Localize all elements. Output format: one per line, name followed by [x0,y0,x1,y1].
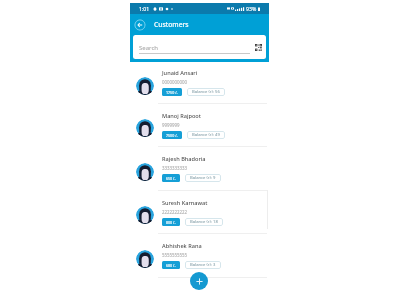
staticText: 93% [246,5,257,12]
staticText: 7500 /- [166,133,178,138]
button[interactable]: Back [133,18,146,31]
staticText: 680 /- [166,263,176,268]
button[interactable]: Balance (r): 18 [185,218,223,226]
staticText: 0000000000 [162,79,188,85]
button[interactable]: Suresh Karnawat [130,191,269,233]
staticText: 800 /- [166,220,176,225]
staticText: 2222222222 [162,209,188,215]
staticText: Manoj Rajpoot [162,112,201,120]
button[interactable]: Rajesh Bhadoria [130,147,269,190]
staticText: 5555555555 [162,252,188,258]
staticText: 9999999 [162,122,180,128]
staticText: Suresh Karnawat [162,199,208,207]
staticText: Balance (r): 49 [192,132,220,138]
button[interactable]: 1750 /- [162,88,182,96]
button[interactable]: Add customer [190,272,208,290]
button[interactable]: 680 /- [162,261,180,269]
staticText: 3333333333 [162,165,188,171]
staticText: Rajesh Bhadoria [162,155,206,163]
staticText: Balance (r): 18 [190,219,218,225]
staticText: Balance (r): 56 [192,89,220,95]
button[interactable]: Manoj Rajpoot [130,104,269,146]
staticText: 1:01 [139,5,150,12]
staticText: Balance (r): 9 [190,175,216,181]
button[interactable]: Balance (r): 9 [185,174,221,182]
button[interactable]: 650 /- [162,174,180,182]
button[interactable]: 7500 /- [162,131,182,139]
button[interactable]: 800 /- [162,218,180,226]
staticText: Search [139,44,158,52]
staticText: Abhishek Rana [162,242,202,250]
button[interactable]: Scan barcode [255,44,262,51]
button[interactable]: Balance (r): 3 [185,261,221,269]
button[interactable]: Balance (r): 56 [187,88,225,96]
button[interactable]: Abhishek Rana [130,234,269,277]
staticText: Balance (r): 3 [190,262,216,268]
staticText: 650 /- [166,176,176,181]
button[interactable]: Junaid Ansari [130,62,269,103]
staticText: Junaid Ansari [162,69,198,77]
button[interactable]: Balance (r): 49 [187,131,225,139]
staticText: Customers [154,20,189,29]
staticText: 1750 /- [166,90,178,95]
